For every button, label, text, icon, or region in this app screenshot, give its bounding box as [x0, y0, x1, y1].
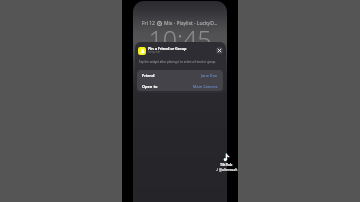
staticText: Jane Doe [201, 73, 218, 78]
staticText: ♪ @alterasalt [216, 167, 238, 172]
button[interactable]: Pin a Friend or Group [135, 42, 226, 93]
staticText: 10:45 [133, 22, 227, 56]
staticText: Main Camera [193, 84, 218, 89]
staticText: TikTok [220, 162, 233, 167]
button[interactable]: Friend [137, 70, 223, 81]
button[interactable]: Open to [137, 81, 223, 91]
staticText: Fri 12 [142, 20, 155, 27]
staticText: Friend [142, 73, 155, 78]
staticText: Snapchat [148, 50, 161, 54]
staticText: Mix · Playlist · LuckyD… [164, 20, 218, 27]
button[interactable]: Dismiss notification [216, 47, 223, 54]
staticText: Tap the widget after placing it to selec… [139, 60, 217, 64]
staticText: Pin a Friend or Group [148, 46, 187, 51]
staticText: Open to [142, 84, 158, 89]
